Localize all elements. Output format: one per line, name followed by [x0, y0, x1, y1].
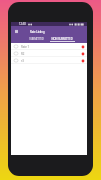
- button[interactable]: R2: [11, 50, 87, 57]
- button[interactable]: Delete: [81, 45, 85, 49]
- button[interactable]: Delete: [81, 59, 85, 63]
- button[interactable]: Open navigation menu: [11, 26, 21, 36]
- staticText: 12:30: [19, 22, 26, 26]
- button[interactable]: Rate 1: [11, 43, 87, 50]
- button[interactable]: r3: [11, 57, 87, 64]
- button[interactable]: SUBMITTED: [24, 36, 49, 41]
- staticText: r3: [21, 59, 24, 63]
- staticText: SUBMITTED: [29, 37, 44, 41]
- staticText: NON SUBMITTED: [51, 37, 73, 41]
- button[interactable]: NON SUBMITTED: [49, 36, 75, 41]
- staticText: R2: [21, 52, 25, 56]
- button[interactable]: Delete: [81, 52, 85, 56]
- staticText: Rate Listing: [30, 30, 45, 34]
- staticText: Rate 1: [21, 45, 30, 49]
